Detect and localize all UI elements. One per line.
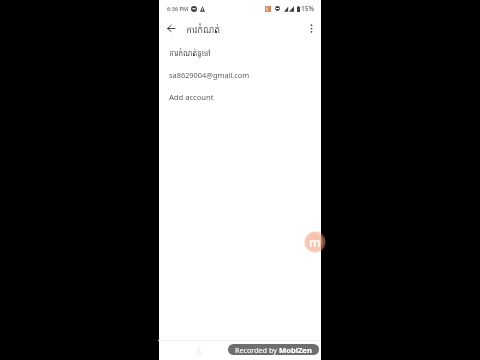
staticText: 6:36 PM — [167, 5, 189, 13]
staticText: ការកំណត់ទូទៅ — [169, 48, 211, 58]
staticText: Recorded by — [235, 345, 279, 355]
staticText: 15% — [301, 4, 315, 13]
staticText: MobiZen — [279, 345, 312, 355]
button[interactable]: ការកំណត់ទូទៅ — [158, 42, 321, 64]
button[interactable]: Add account — [158, 86, 321, 108]
staticText: ការកំណត់ — [186, 23, 221, 36]
staticText: sa8629004@gmail.com — [169, 70, 250, 80]
staticText: m — [309, 234, 321, 250]
button[interactable]: Back — [161, 19, 180, 38]
button[interactable]: More options — [302, 19, 321, 38]
button[interactable]: MobiZen recorder — [304, 231, 326, 253]
button[interactable]: sa8629004@gmail.com — [158, 64, 321, 86]
staticText: Add account — [169, 92, 214, 102]
